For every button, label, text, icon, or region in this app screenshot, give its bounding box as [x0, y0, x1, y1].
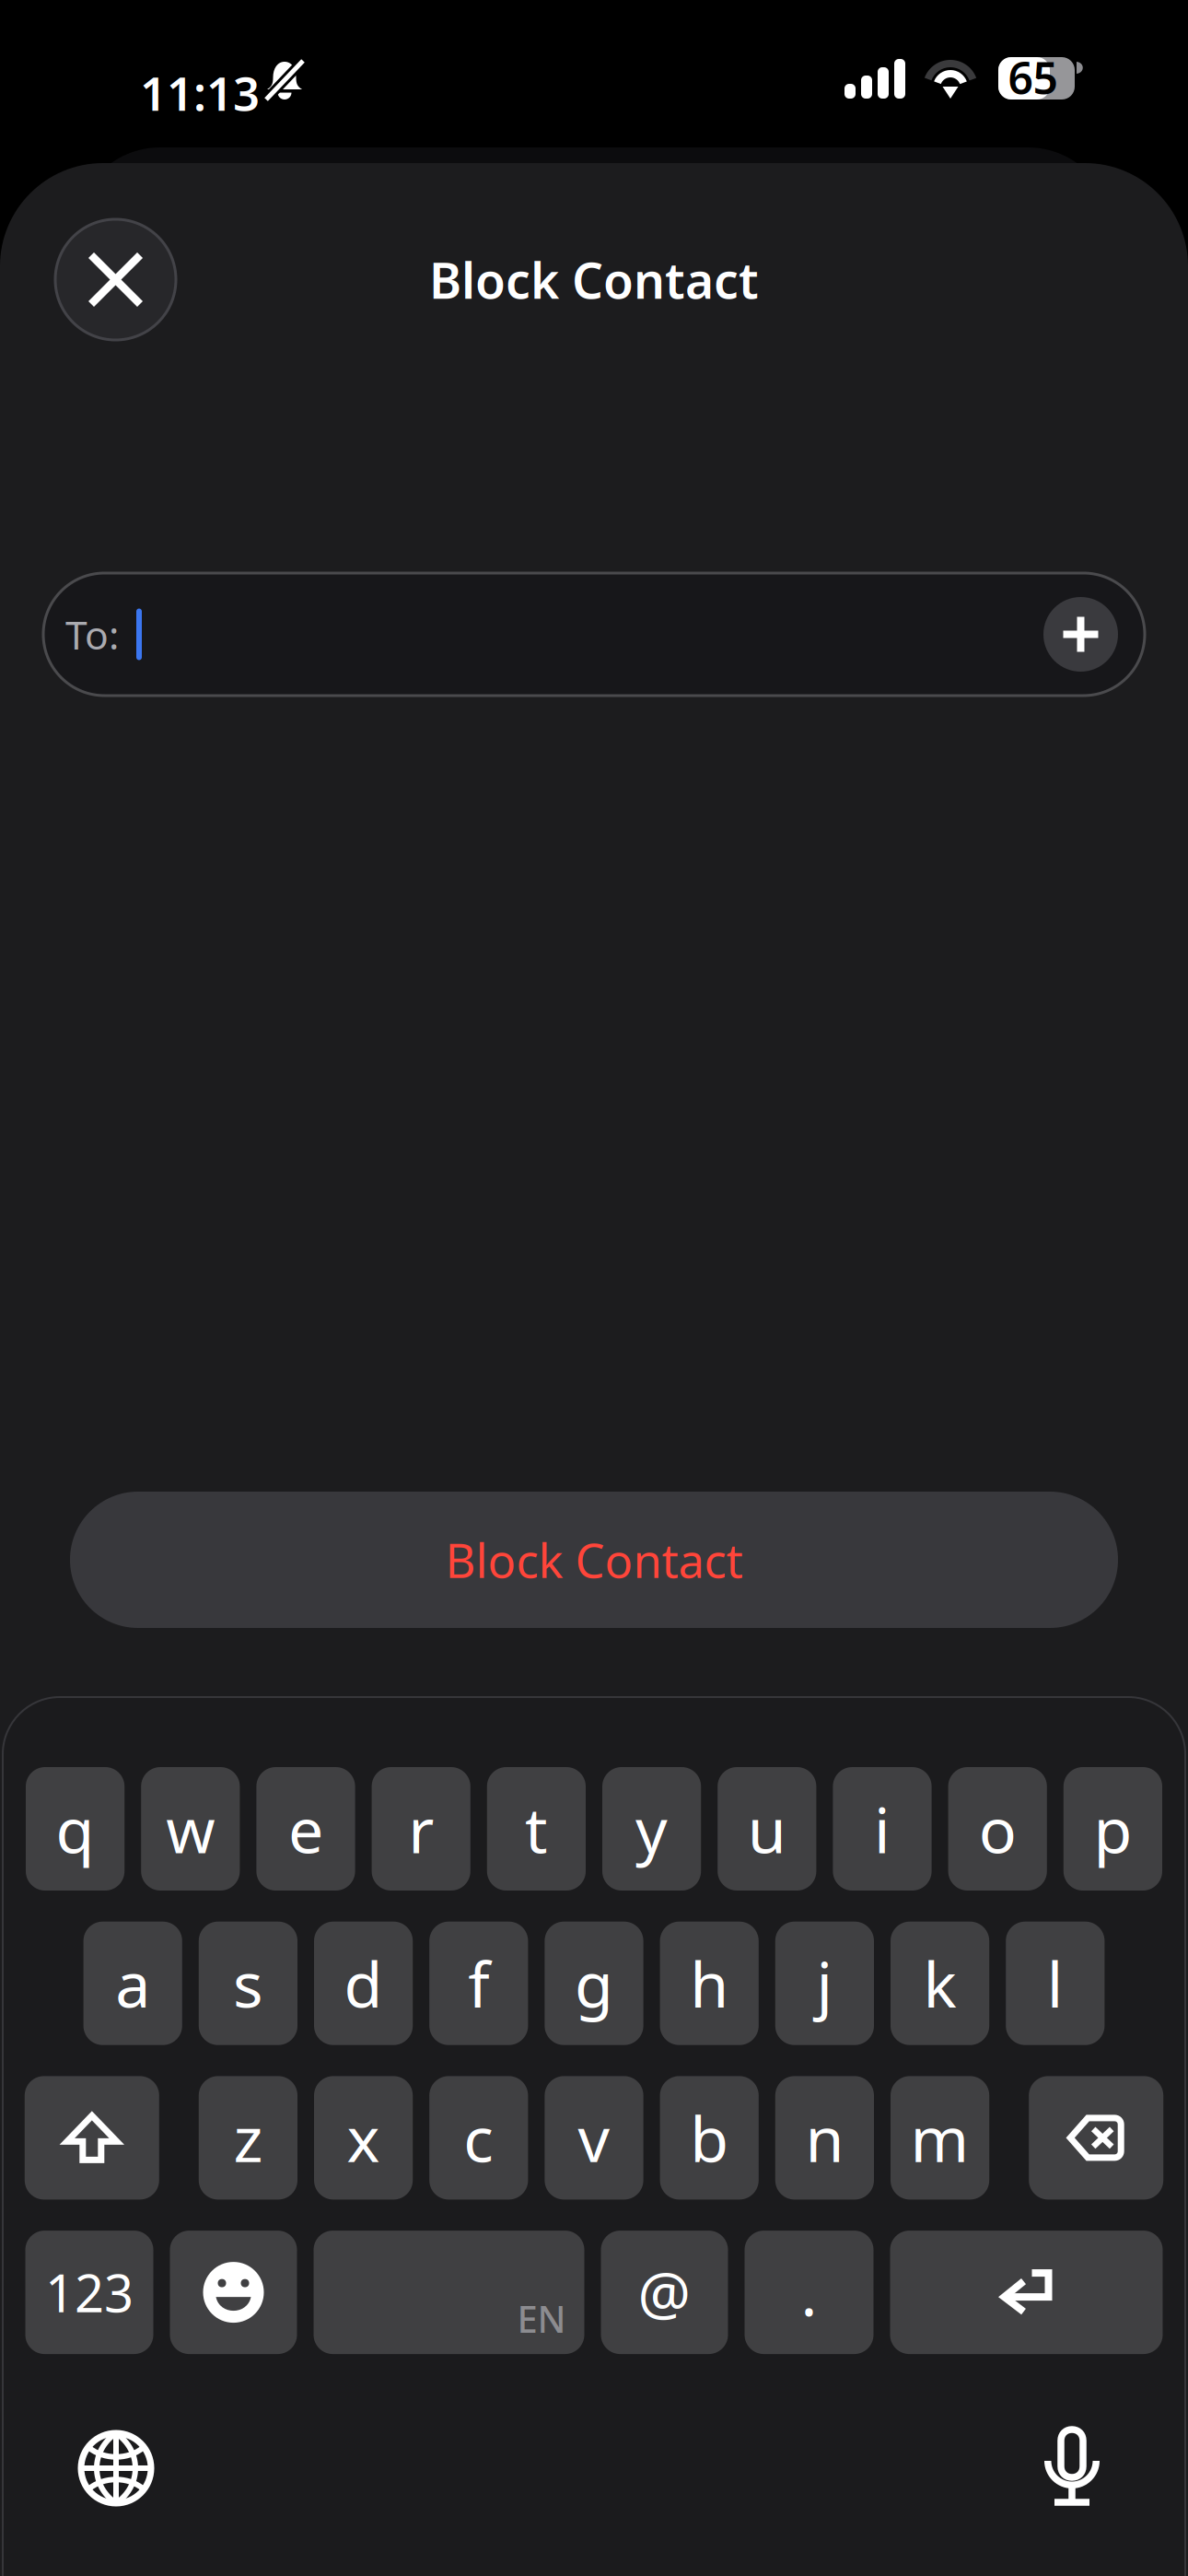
staticText: t [525, 1787, 548, 1870]
button[interactable]: t [487, 1767, 586, 1891]
button[interactable]: f [429, 1922, 528, 2045]
button[interactable]: l [1006, 1922, 1105, 2045]
button[interactable]: n [775, 2076, 874, 2200]
staticText: f [468, 1942, 489, 2025]
button[interactable]: . [745, 2231, 874, 2354]
staticText: j [816, 1942, 833, 2025]
button[interactable]: j [775, 1922, 874, 2045]
staticText: n [805, 2096, 844, 2179]
staticText: y [636, 1787, 668, 1870]
button[interactable]: k [891, 1922, 989, 2045]
button[interactable]: Emoji [170, 2231, 297, 2354]
staticText: . [801, 2252, 817, 2333]
staticText: l [1047, 1942, 1063, 2025]
button[interactable]: Close [55, 219, 176, 340]
staticText: z [233, 2096, 263, 2179]
button[interactable]: g [545, 1922, 643, 2045]
button[interactable]: b [660, 2076, 759, 2200]
staticText: To: [65, 608, 119, 660]
button[interactable]: e [256, 1767, 355, 1891]
staticText: w [166, 1787, 215, 1870]
staticText: 11:13 [140, 62, 260, 124]
staticText: p [1094, 1787, 1132, 1870]
staticText: o [979, 1787, 1016, 1870]
button[interactable]: Shift [25, 2076, 159, 2200]
button[interactable]: v [545, 2076, 643, 2200]
button[interactable]: m [891, 2076, 989, 2200]
staticText: b [690, 2096, 729, 2179]
button[interactable]: a [83, 1922, 182, 2045]
staticText: d [344, 1942, 383, 2025]
button[interactable]: r [372, 1767, 470, 1891]
staticText: c [464, 2096, 494, 2179]
button[interactable]: Delete [1029, 2076, 1163, 2200]
staticText: v [578, 2096, 610, 2179]
staticText: m [910, 2096, 969, 2179]
button[interactable]: z [199, 2076, 297, 2200]
staticText: Block Contact [445, 1529, 743, 1591]
staticText: r [408, 1787, 434, 1870]
button[interactable]: Return [890, 2231, 1163, 2354]
button[interactable]: c [429, 2076, 528, 2200]
staticText: Block Contact [429, 247, 759, 312]
button[interactable]: u [718, 1767, 816, 1891]
staticText: q [56, 1787, 94, 1870]
button[interactable]: d [314, 1922, 413, 2045]
button[interactable]: Block Contact [70, 1492, 1118, 1628]
button[interactable]: w [141, 1767, 240, 1891]
staticText: @ [638, 2253, 691, 2331]
staticText: u [748, 1787, 786, 1870]
button[interactable]: s [199, 1922, 297, 2045]
button[interactable]: h [660, 1922, 759, 2045]
button[interactable]: o [948, 1767, 1047, 1891]
button[interactable]: Dictate [1034, 2426, 1110, 2511]
staticText: k [923, 1942, 956, 2025]
staticText: 65 [1008, 48, 1058, 107]
button[interactable]: Space [314, 2231, 584, 2354]
staticText: i [874, 1787, 891, 1870]
staticText: EN [517, 2294, 566, 2343]
staticText: 123 [45, 2258, 134, 2327]
staticText: e [288, 1787, 323, 1870]
button[interactable]: i [833, 1767, 932, 1891]
button[interactable]: Switch keyboard [78, 2430, 154, 2506]
button[interactable]: y [602, 1767, 701, 1891]
staticText: g [575, 1942, 613, 2025]
staticText: h [690, 1942, 729, 2025]
staticText: s [233, 1942, 263, 2025]
button[interactable]: 123 [25, 2231, 153, 2354]
staticText: a [115, 1942, 150, 2025]
button[interactable]: p [1063, 1767, 1162, 1891]
button[interactable]: q [26, 1767, 125, 1891]
button[interactable]: Add contact [1043, 597, 1118, 672]
staticText: x [347, 2096, 380, 2179]
button[interactable]: @ [601, 2231, 728, 2354]
button[interactable]: x [314, 2076, 413, 2200]
